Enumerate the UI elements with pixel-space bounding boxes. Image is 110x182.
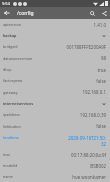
button[interactable]: modelid xyxy=(0,160,110,171)
button[interactable]: localtime xyxy=(0,132,110,149)
staticText: 9:54 xyxy=(2,1,10,6)
staticText: internetservices xyxy=(3,101,34,106)
staticText: 192.168.0.39 xyxy=(79,112,106,118)
staticText: 98 xyxy=(100,55,106,61)
staticText: 1.41.0 xyxy=(93,22,106,28)
staticText: ipaddress xyxy=(3,112,20,117)
button[interactable]: ipaddress xyxy=(0,109,110,120)
staticText: apiversion xyxy=(3,22,21,27)
staticText: bridgeid xyxy=(3,44,18,49)
staticText: mac xyxy=(3,152,11,157)
staticText: modelid xyxy=(3,163,18,168)
button[interactable]: Share xyxy=(98,7,110,19)
staticText: 001788FFFE200A9F xyxy=(66,44,106,50)
button[interactable]: linkbutton xyxy=(0,120,110,132)
staticText: gateway xyxy=(3,90,18,95)
staticText: false xyxy=(96,78,106,84)
button[interactable]: Search xyxy=(86,7,98,19)
button[interactable]: gateway xyxy=(0,86,110,98)
staticText: backup xyxy=(3,33,17,38)
staticText: linkbutton xyxy=(3,124,21,129)
staticText: 192.168.0.1 xyxy=(82,89,106,95)
staticText: false xyxy=(96,123,106,129)
button[interactable]: mac xyxy=(0,149,110,160)
staticText: 00:17:88:20:0a:9f xyxy=(71,152,106,158)
button[interactable]: apiversion xyxy=(0,19,110,30)
staticText: factorynew xyxy=(3,78,23,83)
staticText: /config xyxy=(17,10,34,17)
staticText: datastoreversion xyxy=(3,56,33,61)
button[interactable]: factorynew xyxy=(0,75,110,86)
staticText: dhcp xyxy=(3,67,12,72)
staticText: name xyxy=(3,174,13,179)
button[interactable]: name xyxy=(0,171,110,182)
button[interactable]: Back xyxy=(0,7,13,19)
button[interactable]: dhcp xyxy=(0,64,110,75)
staticText: BSB002 xyxy=(90,163,106,169)
staticText: 2020-09-16T21:50: 32 xyxy=(66,135,106,147)
button[interactable]: datastoreversion xyxy=(0,52,110,64)
staticText: true xyxy=(97,67,106,73)
staticText: localtime xyxy=(3,135,19,140)
staticText: hue woonkamer xyxy=(72,174,106,180)
button[interactable]: backup xyxy=(0,30,110,41)
button[interactable]: bridgeid xyxy=(0,41,110,52)
button[interactable]: internetservices xyxy=(0,98,110,109)
